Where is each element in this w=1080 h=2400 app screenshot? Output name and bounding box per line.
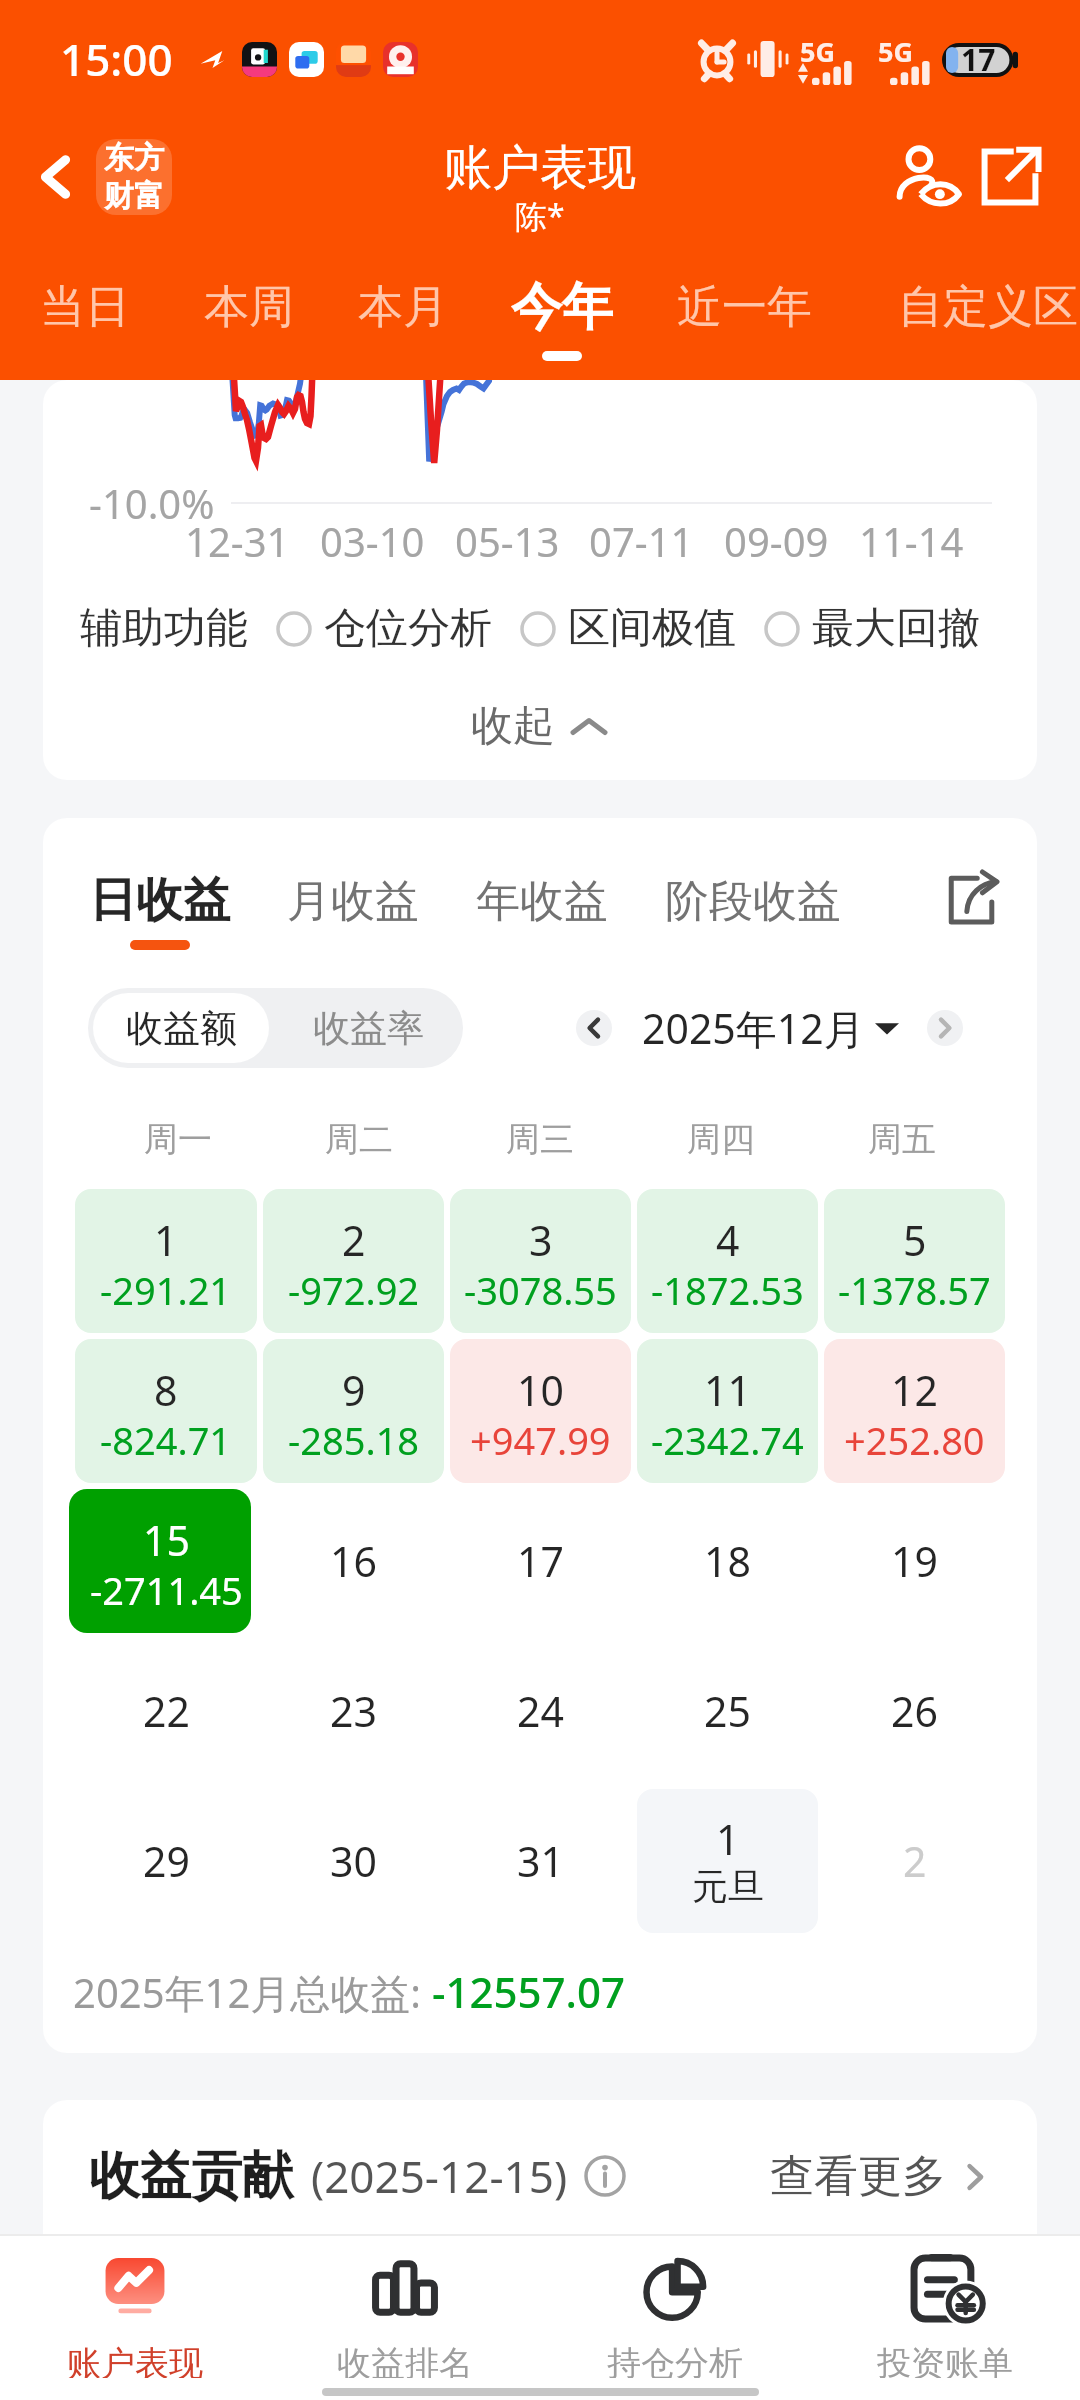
button[interactable]: 29 — [75, 1789, 257, 1933]
button[interactable]: 3 — [450, 1189, 631, 1333]
button[interactable]: 5 — [824, 1189, 1005, 1333]
staticText: 2025年12月总收益: — [73, 1965, 432, 2020]
staticText: 日收益 — [89, 871, 230, 930]
button[interactable]: 查看更多 — [770, 2149, 992, 2204]
staticText: -1872.53 — [651, 1264, 804, 1316]
staticText: 31 — [517, 1833, 564, 1889]
staticText: 最大回撤 — [812, 602, 980, 655]
button[interactable]: Share — [970, 137, 1050, 217]
staticText: 3 — [529, 1212, 553, 1268]
button[interactable]: 31 — [450, 1789, 631, 1933]
staticText: 05-13 — [455, 514, 560, 568]
button[interactable]: 17 — [450, 1489, 631, 1633]
staticText: -12557.07 — [432, 1963, 626, 2020]
staticText: 12 — [891, 1362, 938, 1418]
button[interactable]: 投资账单 — [810, 2236, 1080, 2378]
staticText: 23 — [330, 1683, 377, 1739]
button[interactable]: 2 — [824, 1789, 1005, 1933]
button[interactable]: 持仓分析 — [540, 2236, 810, 2378]
staticText: 15 — [143, 1512, 190, 1568]
staticText: -824.71 — [100, 1414, 232, 1466]
staticText: 收起 — [471, 700, 555, 753]
button[interactable]: 1 — [75, 1189, 257, 1333]
staticText: 2 — [342, 1212, 366, 1268]
staticText: 阶段收益 — [665, 874, 841, 929]
button[interactable]: 阶段收益 — [665, 871, 841, 926]
button[interactable]: 8 — [75, 1339, 257, 1483]
staticText: 5G — [800, 33, 835, 70]
staticText: 10 — [517, 1362, 564, 1418]
staticText: 收益贡献 — [89, 2144, 293, 2208]
button[interactable]: Previous month — [576, 1010, 612, 1046]
button[interactable]: 18 — [637, 1489, 818, 1633]
button[interactable]: Share — [945, 873, 997, 925]
staticText: 9 — [342, 1362, 366, 1418]
staticText: 03-10 — [320, 514, 425, 568]
staticText: 5 — [903, 1212, 927, 1268]
button[interactable]: 4 — [637, 1189, 818, 1333]
button[interactable]: 日收益 — [89, 871, 230, 950]
button[interactable]: 自定义区间 — [885, 279, 1080, 336]
staticText: 19 — [891, 1533, 938, 1589]
staticText: -2342.74 — [651, 1414, 804, 1466]
button[interactable]: 收益额 — [93, 993, 269, 1063]
staticText: 近一年 — [677, 279, 812, 336]
button[interactable]: 本月 — [278, 279, 528, 336]
button[interactable]: 仓位分析 — [276, 602, 492, 655]
staticText: 周五 — [868, 1118, 936, 1161]
button[interactable]: 收益排名 — [270, 2236, 540, 2378]
staticText: 本周 — [204, 279, 294, 336]
button[interactable]: 今年 — [437, 275, 687, 361]
button[interactable]: 月收益 — [287, 871, 419, 926]
button[interactable]: 1 — [637, 1789, 818, 1933]
button[interactable]: 11 — [637, 1339, 818, 1483]
button[interactable]: 30 — [263, 1789, 444, 1933]
staticText: 16 — [330, 1533, 377, 1589]
staticText: -285.18 — [288, 1414, 420, 1466]
button[interactable]: 最大回撤 — [764, 602, 980, 655]
staticText: -3078.55 — [464, 1264, 617, 1316]
button[interactable]: 23 — [263, 1639, 444, 1783]
button[interactable]: 24 — [450, 1639, 631, 1783]
staticText: 账户表现 — [444, 138, 636, 198]
button[interactable]: 年收益 — [476, 871, 608, 926]
button[interactable]: 12 — [824, 1339, 1005, 1483]
staticText: 本月 — [358, 279, 448, 336]
button[interactable]: 25 — [637, 1639, 818, 1783]
button[interactable]: Next month — [927, 1010, 963, 1046]
staticText: 收益率 — [313, 1005, 424, 1052]
button[interactable]: 收益率 — [274, 988, 463, 1068]
staticText: 收益排名 — [337, 2342, 473, 2378]
button[interactable]: Back — [26, 147, 86, 207]
button[interactable]: 账户表现 — [0, 2236, 270, 2378]
button[interactable]: 当日 — [0, 279, 210, 336]
button[interactable]: 15 — [69, 1489, 251, 1633]
staticText: 15:00 — [60, 29, 173, 89]
button[interactable]: 本周 — [124, 279, 374, 336]
staticText: 2 — [903, 1833, 927, 1889]
button[interactable]: 26 — [824, 1639, 1005, 1783]
button[interactable]: 9 — [263, 1339, 444, 1483]
button[interactable]: 东方 — [96, 139, 172, 215]
staticText: 12-31 — [185, 514, 290, 568]
staticText: 东方 — [104, 139, 164, 177]
button[interactable]: 收起 — [43, 700, 1037, 753]
staticText: 自定义区间 — [898, 279, 1080, 336]
staticText: 周四 — [687, 1118, 755, 1161]
button[interactable]: 22 — [75, 1639, 257, 1783]
button[interactable]: 2025年12月 — [642, 1000, 899, 1056]
staticText: -10.0% — [89, 476, 215, 530]
button[interactable]: Account — [886, 137, 966, 217]
staticText: 周一 — [144, 1118, 212, 1161]
button[interactable]: 16 — [263, 1489, 444, 1633]
button[interactable]: 19 — [824, 1489, 1005, 1633]
button[interactable]: 近一年 — [619, 279, 869, 336]
staticText: 11 — [704, 1362, 751, 1418]
staticText: 年收益 — [476, 874, 608, 929]
button[interactable]: 2 — [263, 1189, 444, 1333]
staticText: 月收益 — [287, 874, 419, 929]
button[interactable]: 区间极值 — [520, 602, 736, 655]
staticText: -291.21 — [100, 1264, 232, 1316]
button[interactable]: 10 — [450, 1339, 631, 1483]
staticText: 今年 — [511, 275, 613, 339]
